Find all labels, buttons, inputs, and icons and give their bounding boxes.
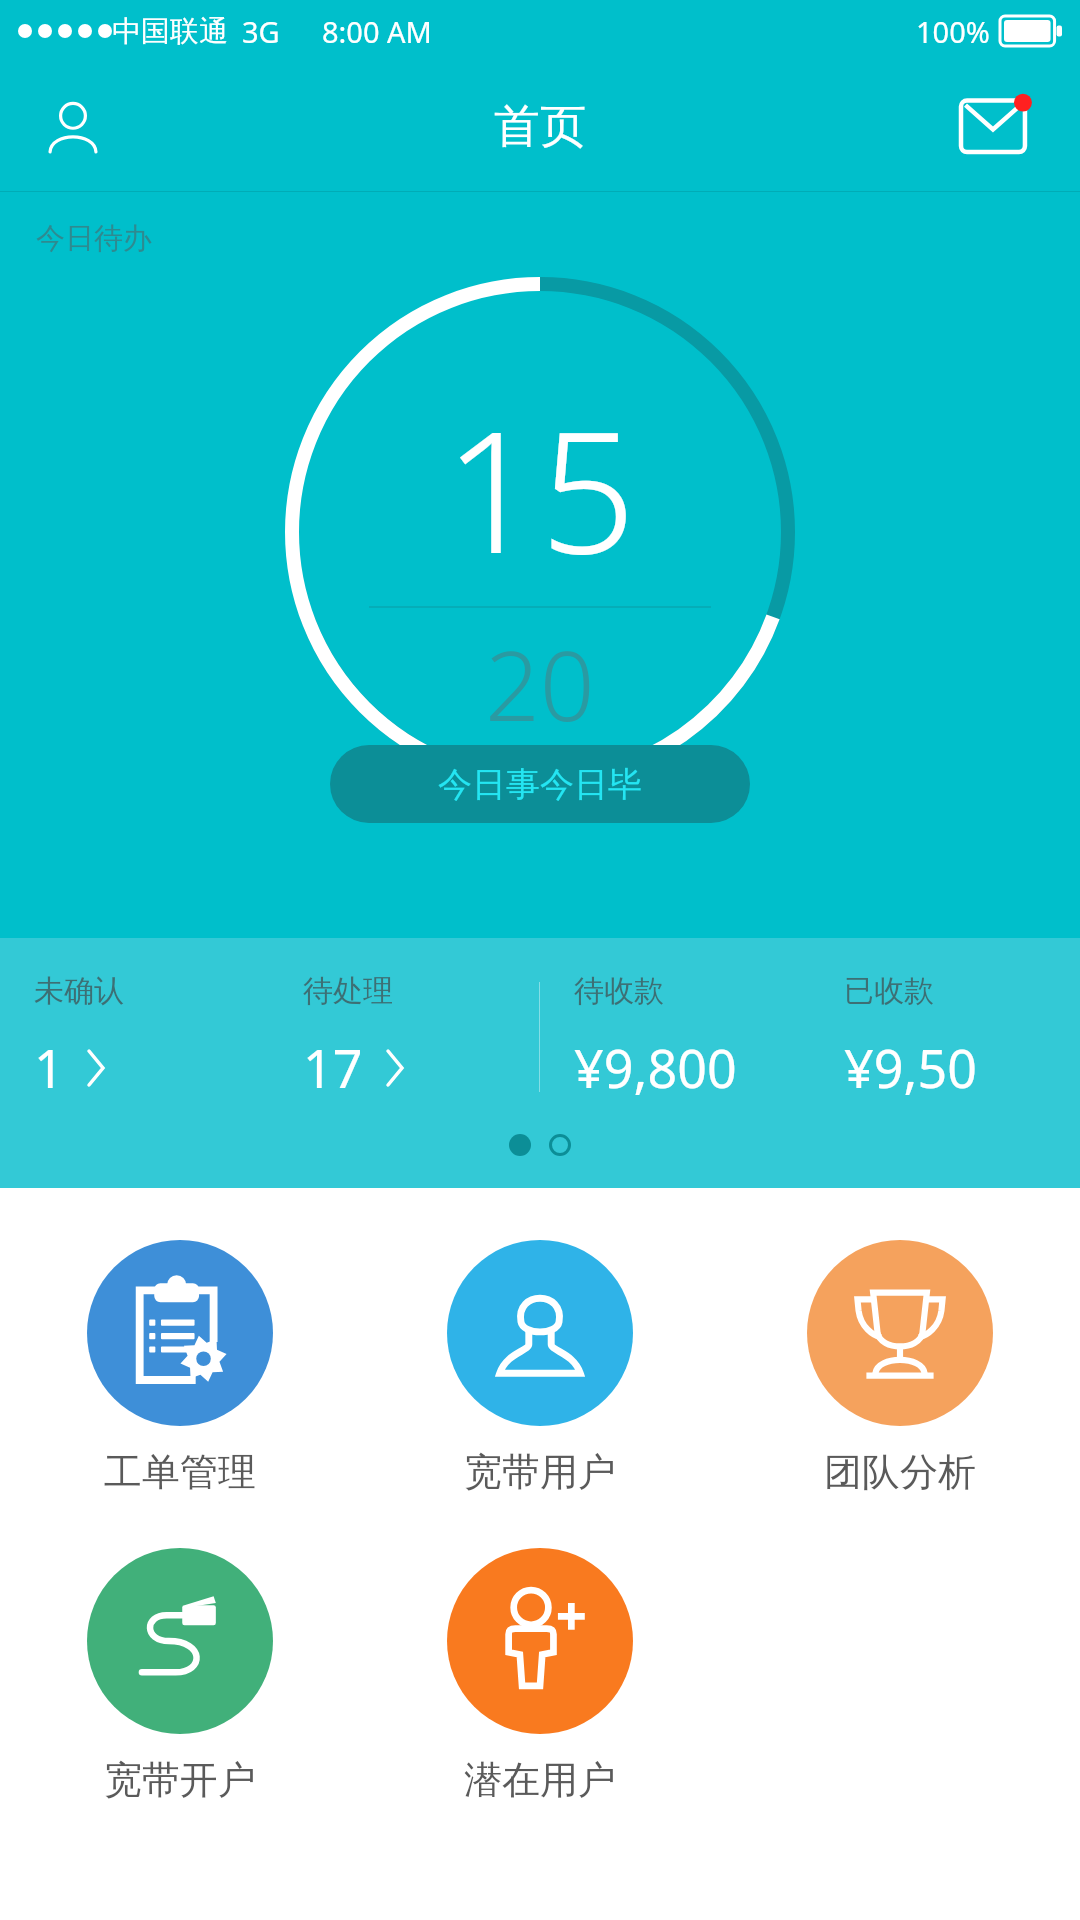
staticText: 3G	[242, 12, 280, 51]
staticText: 今日事今日毕	[438, 763, 642, 806]
staticText: 潜在用户	[464, 1756, 616, 1804]
staticText: 17	[303, 1032, 363, 1103]
button[interactable]: Profile	[28, 82, 118, 172]
staticText: 今日待办	[36, 220, 152, 257]
button[interactable]: 今日事今日毕	[330, 745, 750, 823]
button[interactable]: 工单管理	[0, 1232, 360, 1504]
button[interactable]: 宽带用户	[360, 1232, 720, 1504]
button[interactable]: 宽带开户	[0, 1540, 360, 1812]
staticText: 20	[485, 618, 595, 749]
button[interactable]: 已收款	[810, 972, 1080, 1103]
staticText: ¥9,800	[574, 1032, 737, 1103]
staticText: 待收款	[574, 972, 664, 1010]
staticText: 1	[34, 1032, 64, 1103]
staticText: 已收款	[844, 972, 934, 1010]
staticText: 未确认	[34, 972, 124, 1010]
staticText: ¥9,50	[844, 1032, 977, 1103]
staticText: 首页	[494, 98, 586, 156]
button[interactable]: 待处理	[269, 972, 539, 1103]
staticText: 宽带开户	[104, 1756, 256, 1804]
button[interactable]: 团队分析	[720, 1232, 1080, 1504]
staticText: 待处理	[303, 972, 393, 1010]
staticText: 中国联通	[112, 13, 228, 50]
staticText: 团队分析	[824, 1448, 976, 1496]
staticText: 15	[444, 373, 636, 602]
staticText: 宽带用户	[464, 1448, 616, 1496]
button[interactable]: 未确认	[0, 972, 269, 1103]
button[interactable]: 潜在用户	[360, 1540, 720, 1812]
button[interactable]: 待收款	[540, 972, 810, 1103]
staticText: 8:00 AM	[322, 12, 432, 51]
staticText: 100%	[916, 12, 990, 51]
staticText: 工单管理	[104, 1448, 256, 1496]
button[interactable]: Messages	[950, 77, 1050, 177]
